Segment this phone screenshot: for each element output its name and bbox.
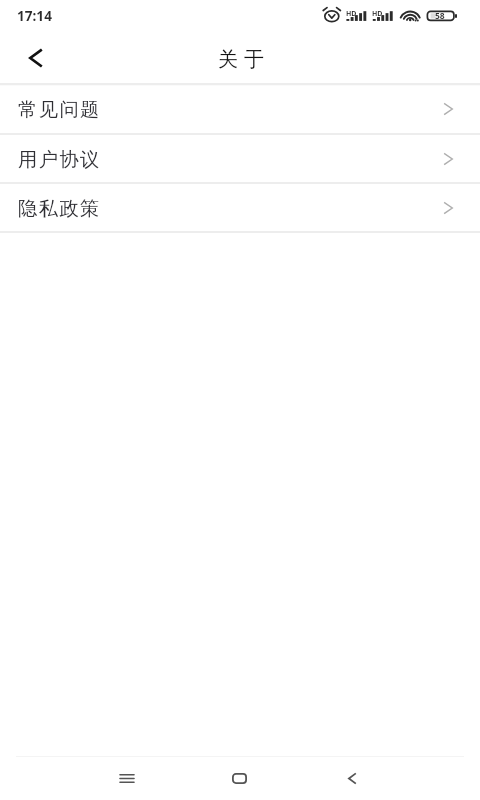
staticText: 17:14 (17, 6, 52, 25)
button[interactable]: Recents (71, 756, 183, 800)
button[interactable]: 用户协议 (0, 133, 480, 183)
staticText: 隐私政策 (18, 196, 101, 220)
staticText: 常见问题 (18, 97, 101, 121)
button[interactable]: Back (295, 756, 407, 800)
staticText: HD (346, 9, 357, 19)
staticText: HD (372, 9, 383, 19)
button[interactable]: Home (183, 756, 295, 800)
staticText: 关于 (4, 47, 480, 72)
button[interactable]: Back (12, 35, 58, 81)
staticText: 58 (435, 10, 445, 22)
staticText: 用户协议 (18, 147, 101, 171)
button[interactable]: 隐私政策 (0, 182, 480, 231)
button[interactable]: 常见问题 (0, 83, 480, 133)
